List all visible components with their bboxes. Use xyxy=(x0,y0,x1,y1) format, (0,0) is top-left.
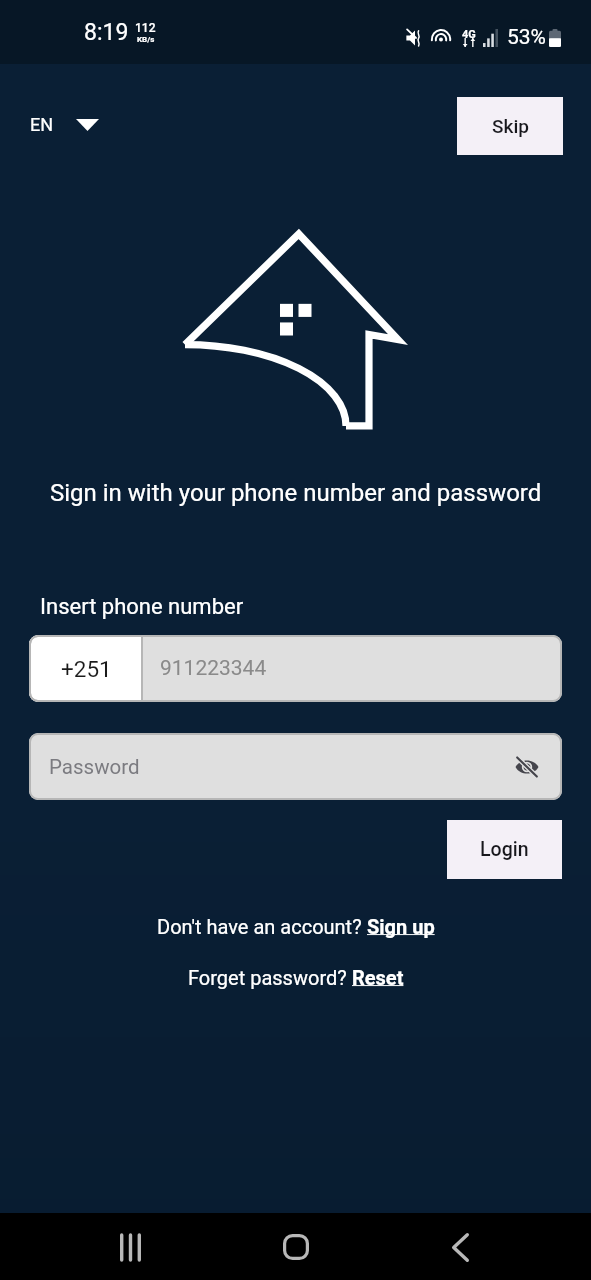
staticText: Sign up xyxy=(367,915,435,938)
button[interactable]: Show password xyxy=(510,750,544,784)
staticText: 4G xyxy=(462,28,476,41)
staticText: 911223344 xyxy=(160,656,267,681)
button[interactable]: Back xyxy=(430,1217,490,1277)
button[interactable]: Password xyxy=(29,733,562,800)
staticText: +251 xyxy=(61,656,112,682)
button[interactable]: Login xyxy=(447,820,562,879)
button[interactable]: Recents xyxy=(100,1217,160,1277)
staticText: Login xyxy=(480,838,529,861)
staticText: Don't have an account? xyxy=(157,915,367,938)
button[interactable]: 911223344 xyxy=(143,635,562,702)
staticText: 53% xyxy=(507,25,546,50)
staticText: 8:19 xyxy=(84,19,129,46)
staticText: Insert phone number xyxy=(40,594,244,620)
button[interactable]: EN xyxy=(24,105,103,144)
staticText: Skip xyxy=(492,115,529,137)
staticText: Forget password? xyxy=(188,966,352,989)
staticText: Reset xyxy=(352,966,404,989)
staticText: EN xyxy=(30,114,54,135)
button[interactable]: Home xyxy=(266,1217,326,1277)
button[interactable]: Reset xyxy=(352,966,404,989)
staticText: 112 xyxy=(135,21,156,35)
button[interactable]: Sign up xyxy=(367,915,435,938)
button[interactable]: Skip xyxy=(457,97,563,155)
staticText: KB/s xyxy=(137,35,155,44)
staticText: Sign in with your phone number and passw… xyxy=(50,479,542,507)
button[interactable]: +251 xyxy=(29,635,143,702)
staticText: Password xyxy=(49,755,140,779)
